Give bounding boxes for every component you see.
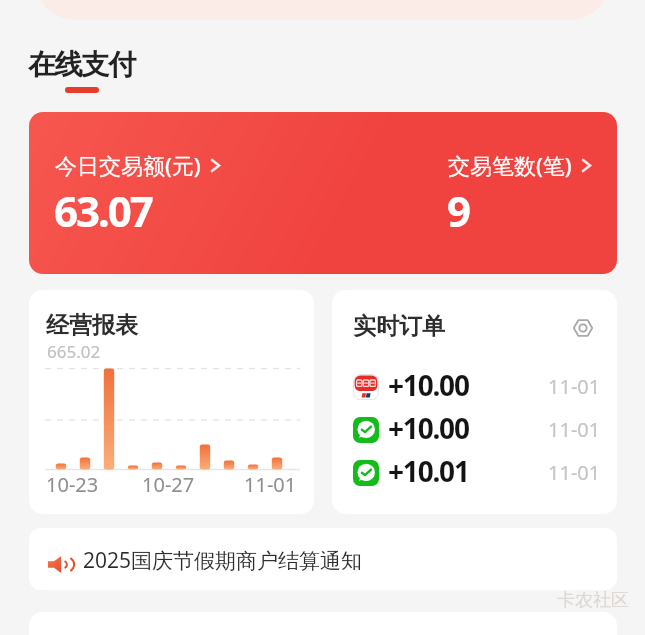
button[interactable]: 经营报表 xyxy=(29,290,314,514)
staticText: +10.00 xyxy=(388,409,469,447)
staticText: 卡农社区 xyxy=(557,589,629,612)
staticText: 11-01 xyxy=(548,459,601,486)
staticText: +10.01 xyxy=(388,452,469,490)
staticText: 2025国庆节假期商户结算通知 xyxy=(83,546,363,575)
button[interactable]: +10.01 xyxy=(332,452,617,494)
staticText: 11-01 xyxy=(244,471,297,498)
staticText: 10-23 xyxy=(46,471,99,498)
staticText: 63.07 xyxy=(54,182,152,239)
button[interactable]: +10.00 xyxy=(332,366,617,408)
staticText: 11-01 xyxy=(548,373,601,400)
staticText: 实时订单 xyxy=(353,312,445,341)
button[interactable]: 2025国庆节假期商户结算通知 xyxy=(29,528,617,590)
staticText: 11-01 xyxy=(548,416,601,443)
staticText: 9 xyxy=(447,182,472,239)
staticText: 今日交易额(元) xyxy=(55,150,201,180)
button[interactable] xyxy=(572,317,594,339)
button[interactable]: +10.00 xyxy=(332,409,617,451)
staticText: 经营报表 xyxy=(46,311,138,340)
button[interactable]: 今日交易额(元) xyxy=(29,112,617,274)
staticText: 665.02 xyxy=(47,340,101,363)
staticText: 交易笔数(笔) xyxy=(448,150,572,180)
staticText: +10.00 xyxy=(388,366,469,404)
staticText: 在线支付 xyxy=(28,47,136,82)
staticText: 10-27 xyxy=(142,471,195,498)
